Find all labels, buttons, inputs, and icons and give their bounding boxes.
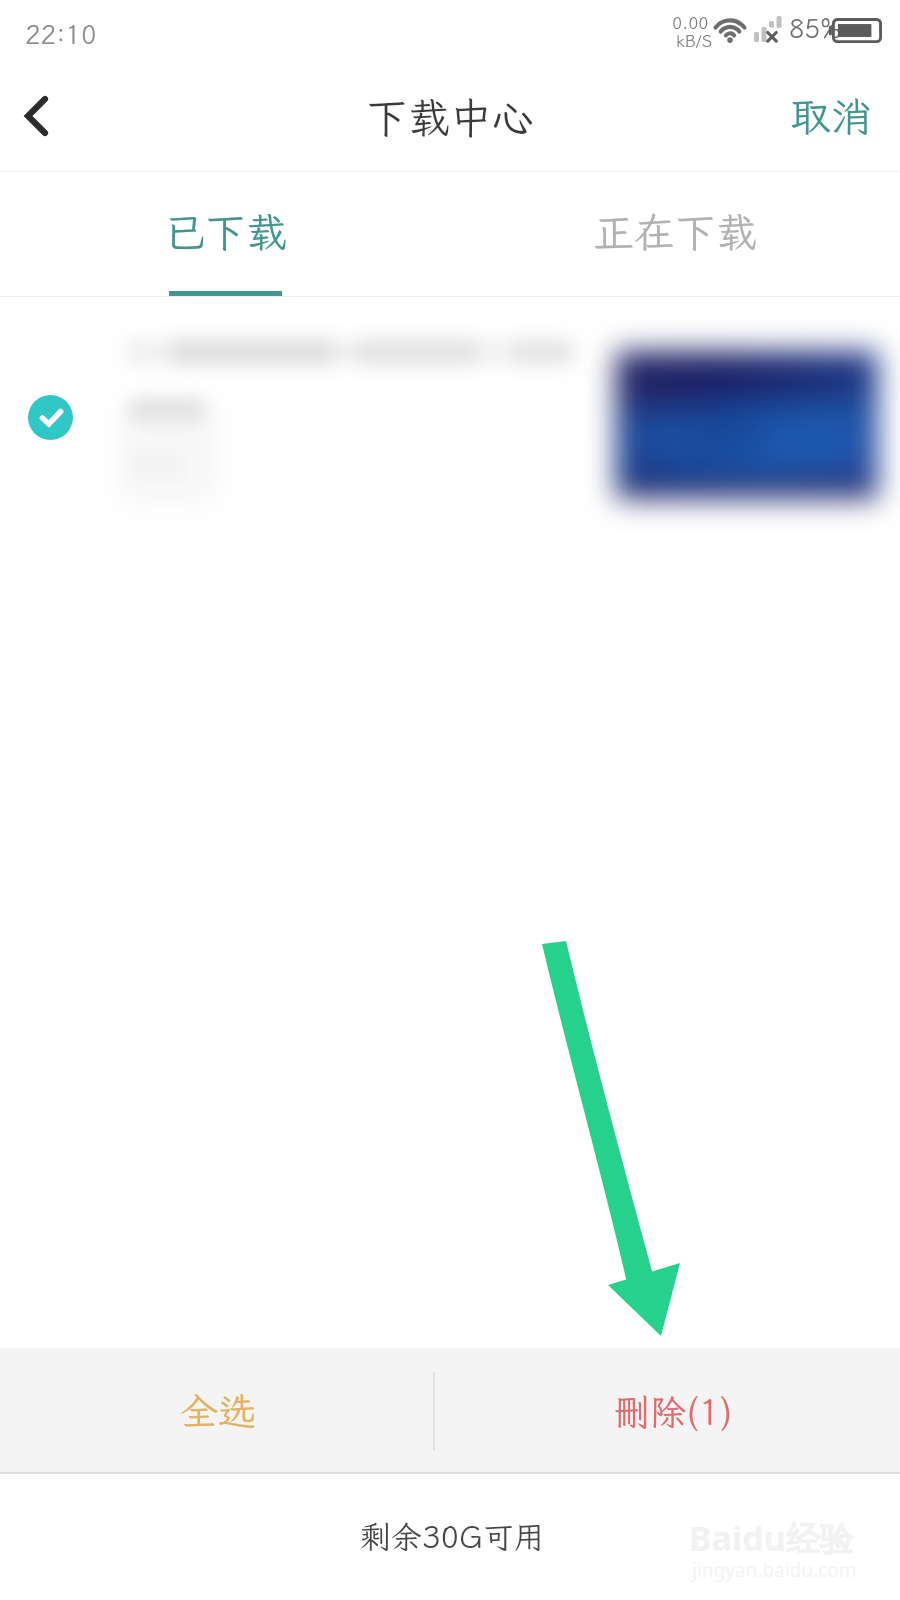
staticText: kB/S (676, 29, 713, 51)
button[interactable]: Back (0, 66, 73, 166)
staticText: 已下载 (164, 205, 287, 259)
button[interactable]: 正在下载 (450, 172, 900, 297)
button[interactable]: 全选 (0, 1348, 450, 1474)
staticText: 剩余30G可用 (360, 1516, 545, 1557)
staticText: 22:10 (25, 17, 97, 51)
staticText: 取消 (790, 89, 872, 143)
staticText: 0.00 (672, 11, 709, 33)
staticText: Baidu经验 (689, 1515, 854, 1561)
button[interactable]: 取消 (758, 66, 900, 166)
button[interactable] (0, 297, 900, 537)
button[interactable]: 已下载 (0, 172, 450, 297)
button[interactable]: 删除(1) (450, 1348, 900, 1474)
staticText: 全选 (180, 1386, 257, 1436)
staticText: 正在下载 (593, 205, 757, 259)
staticText: jingyan.baidu.com (692, 1557, 857, 1583)
staticText: 下载中心 (366, 90, 535, 145)
staticText: 85% (789, 11, 842, 45)
staticText: 删除(1) (614, 1388, 733, 1435)
